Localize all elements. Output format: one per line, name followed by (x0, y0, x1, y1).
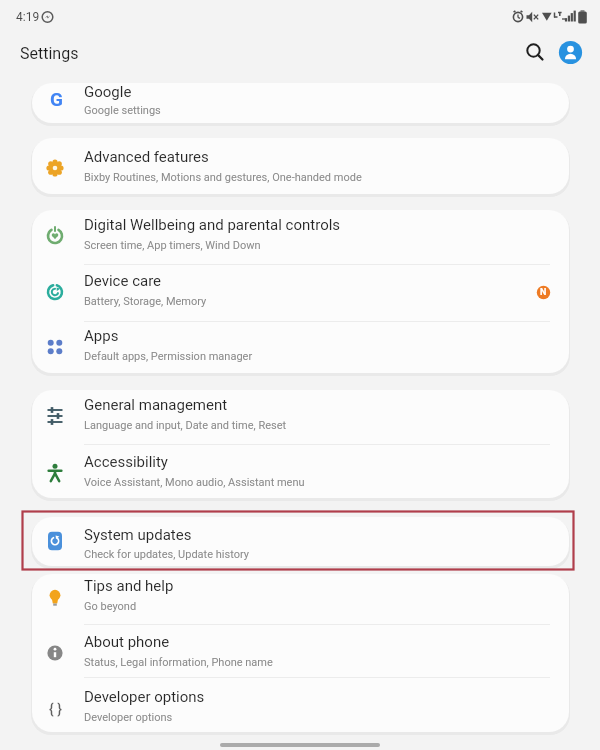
button[interactable] (518, 36, 550, 68)
button[interactable] (32, 626, 569, 680)
button[interactable] (32, 141, 569, 195)
staticText: G (50, 88, 63, 108)
staticText: Screen time, App timers, Wind Down (84, 239, 261, 252)
staticText: Advanced features (84, 148, 209, 166)
staticText: System updates (84, 526, 192, 544)
staticText: Digital Wellbeing and parental controls (84, 216, 341, 234)
button[interactable] (556, 38, 584, 66)
button[interactable] (32, 570, 569, 624)
staticText: About phone (84, 633, 170, 651)
staticText: Developer options (84, 688, 205, 706)
button[interactable] (32, 209, 569, 263)
staticText: Tips and help (84, 577, 174, 595)
staticText: Battery, Storage, Memory (84, 295, 207, 308)
button[interactable] (32, 389, 569, 443)
staticText: 4:19 (16, 10, 40, 24)
staticText: N (540, 287, 547, 298)
staticText: Google settings (84, 104, 161, 117)
staticText: Language and input, Date and time, Reset (84, 419, 287, 432)
button[interactable] (32, 320, 569, 374)
staticText: Google (84, 83, 132, 101)
staticText: Default apps, Permission manager (84, 350, 253, 363)
staticText: Bixby Routines, Motions and gestures, On… (84, 171, 362, 184)
staticText: Status, Legal information, Phone name (84, 656, 273, 669)
button[interactable] (32, 446, 569, 500)
staticText: General management (84, 396, 228, 414)
button[interactable] (32, 518, 569, 572)
staticText: Device care (84, 272, 162, 290)
staticText: Go beyond (84, 600, 137, 613)
button[interactable] (32, 83, 569, 123)
button[interactable] (32, 681, 569, 735)
staticText: Voice Assistant, Mono audio, Assistant m… (84, 476, 305, 489)
staticText: Check for updates, Update history (84, 548, 249, 561)
staticText: Developer options (84, 711, 173, 724)
staticText: Accessibility (84, 453, 168, 471)
staticText: { } (49, 701, 62, 717)
staticText: Apps (84, 327, 119, 345)
staticText: Settings (20, 44, 79, 63)
button[interactable] (32, 265, 569, 319)
